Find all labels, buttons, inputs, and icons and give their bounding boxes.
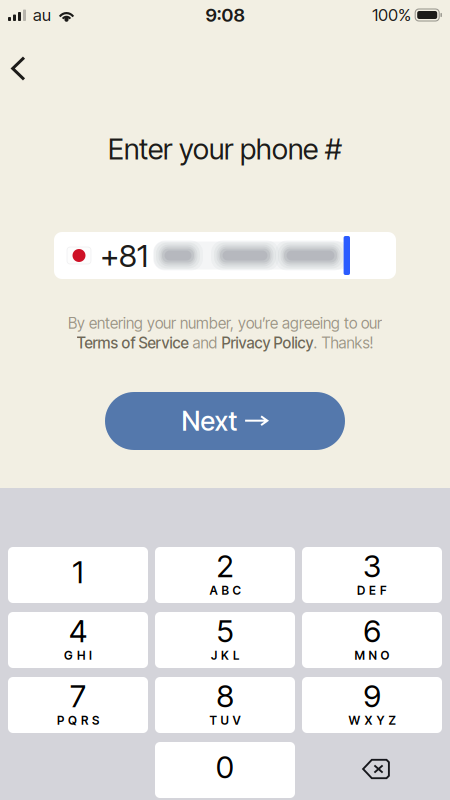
- staticText: P Q R S: [57, 713, 99, 728]
- button[interactable]: 6: [302, 612, 442, 668]
- button[interactable]: 7: [8, 677, 148, 733]
- staticText: J K L: [211, 648, 239, 663]
- staticText: 6: [363, 612, 380, 649]
- staticText: 4: [69, 612, 87, 649]
- staticText: Terms of Service: [76, 334, 188, 352]
- staticText: 100%: [372, 5, 411, 25]
- button[interactable]: 5: [155, 612, 295, 668]
- button[interactable]: 1: [8, 547, 148, 603]
- button[interactable]: 0: [155, 742, 295, 798]
- button[interactable]: 4: [8, 612, 148, 668]
- button[interactable]: 9: [302, 677, 442, 733]
- button[interactable]: Delete: [302, 742, 442, 798]
- button[interactable]: Back: [0, 48, 42, 91]
- staticText: G H I: [64, 648, 92, 663]
- staticText: 2: [216, 547, 233, 584]
- button[interactable]: Privacy Policy: [221, 334, 313, 352]
- staticText: 0: [216, 748, 234, 785]
- staticText: 9: [363, 677, 380, 714]
- staticText: . Thanks!: [313, 334, 373, 352]
- staticText: 8: [216, 677, 233, 714]
- staticText: 9:08: [205, 4, 244, 26]
- staticText: A B C: [209, 583, 240, 598]
- button[interactable]: Next: [105, 392, 345, 450]
- button[interactable]: 2: [155, 547, 295, 603]
- staticText: 1: [72, 553, 83, 590]
- staticText: By entering your number, you’re agreeing…: [68, 314, 382, 333]
- staticText: M N O: [354, 648, 389, 663]
- staticText: au: [33, 5, 51, 25]
- staticText: and: [188, 334, 221, 352]
- staticText: W X Y Z: [348, 713, 395, 728]
- staticText: Enter your phone #: [108, 132, 342, 166]
- button[interactable]: 8: [155, 677, 295, 733]
- staticText: D E F: [357, 583, 387, 598]
- staticText: Next: [181, 405, 237, 437]
- staticText: +81: [100, 236, 148, 274]
- staticText: Privacy Policy: [221, 334, 313, 352]
- staticText: 3: [363, 547, 381, 584]
- button[interactable]: 3: [302, 547, 442, 603]
- staticText: T U V: [209, 713, 240, 728]
- staticText: 7: [70, 677, 86, 714]
- button[interactable]: Terms of Service: [76, 334, 188, 352]
- staticText: 5: [216, 612, 233, 649]
